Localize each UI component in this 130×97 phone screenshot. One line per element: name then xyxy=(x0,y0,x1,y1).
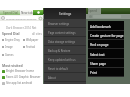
staticText: Site app list android browser xyxy=(6,81,43,85)
button[interactable]: Speed Dial xyxy=(0,10,20,15)
button[interactable]: Speed Dial xyxy=(88,8,101,14)
button[interactable]: Faces 4.0 Graphic Browser 11 xyxy=(2,75,43,79)
staticText: Backup & Restore xyxy=(48,49,71,53)
staticText: Dark Browser 2014 Net xyxy=(6,26,37,30)
staticText: Image xyxy=(5,45,13,49)
staticText: Speed Dial xyxy=(2,31,20,36)
button[interactable]: Keep updated with us xyxy=(44,55,86,64)
staticText: Create gesture for page xyxy=(90,34,124,38)
staticText: New tab xyxy=(21,11,33,15)
button[interactable]: Print xyxy=(88,68,124,77)
staticText: Share page xyxy=(90,62,106,66)
button[interactable]: Share page xyxy=(88,59,124,68)
button[interactable]: Find on page xyxy=(88,40,124,49)
staticText: Reset to default xyxy=(48,67,68,71)
staticText: Faces 4.0 Graphic Browser 11 xyxy=(6,75,43,79)
staticText: Keep updated with us xyxy=(48,58,76,62)
button[interactable]: Add bookmark xyxy=(88,22,124,31)
staticText: Add bookmark xyxy=(90,25,111,29)
staticText: Engine Dray xyxy=(5,38,20,42)
button[interactable]: New tab xyxy=(20,10,33,15)
button[interactable]: Create gesture for page xyxy=(88,31,124,40)
staticText: Find on page xyxy=(90,43,109,47)
button[interactable]: Site app list android browser xyxy=(2,81,43,85)
staticText: Data storage settings xyxy=(48,40,75,44)
button[interactable]: Engine Dray xyxy=(2,38,23,42)
button[interactable]: Wallpaper xyxy=(23,38,39,42)
staticText: Festival xyxy=(26,45,36,49)
button[interactable]: Games xyxy=(2,53,23,57)
button[interactable]: Page content settings xyxy=(44,28,86,37)
button[interactable]: Reload xyxy=(38,16,43,21)
staticText: Speed Dial xyxy=(88,9,101,13)
staticText: Most visited xyxy=(2,63,23,68)
button[interactable]: About xyxy=(44,73,86,82)
button[interactable]: Data storage settings xyxy=(44,37,86,46)
button[interactable]: Page info xyxy=(1,16,5,20)
button[interactable]: browser.speeddial.example.net xyxy=(5,16,38,20)
staticText: Settings xyxy=(59,12,72,16)
staticText: Browser settings xyxy=(48,22,70,26)
staticText: Select text xyxy=(90,53,105,57)
button[interactable]: Select text xyxy=(88,50,124,59)
staticText: Page content settings xyxy=(48,31,76,35)
staticText: Games xyxy=(5,53,14,57)
staticText: Wallpaper xyxy=(26,38,39,42)
button[interactable]: Backup & Restore xyxy=(44,46,86,55)
button[interactable]: Browser settings xyxy=(44,19,86,28)
staticText: Bright Browser home xyxy=(6,69,35,73)
staticText: all sites xyxy=(32,32,42,36)
button[interactable]: New tab xyxy=(33,10,43,15)
button[interactable]: Festival xyxy=(23,45,36,49)
staticText: About xyxy=(48,76,56,80)
button[interactable]: Bright Browser home xyxy=(2,69,43,73)
button[interactable]: Image xyxy=(2,45,23,49)
staticText: Print xyxy=(90,71,97,75)
staticText: Speed Dial xyxy=(3,11,18,15)
button[interactable]: Reset to default xyxy=(44,64,86,73)
staticText: browser.speeddial.example.net xyxy=(6,17,38,20)
